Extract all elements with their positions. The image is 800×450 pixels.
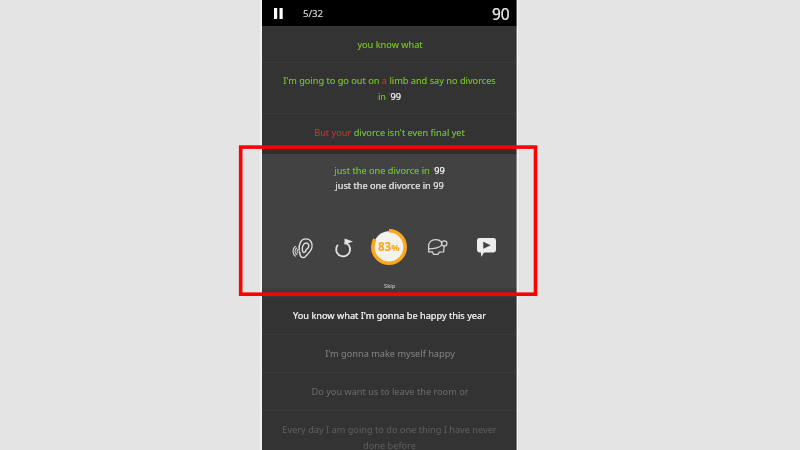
staticText: I'm gonna make myself happy bbox=[325, 347, 455, 360]
button[interactable]: But your divorce isn't even final yet bbox=[262, 114, 517, 151]
staticText: 83% bbox=[378, 239, 400, 255]
button[interactable]: I'm gonna make myself happy bbox=[262, 335, 517, 372]
staticText: Skip bbox=[384, 282, 396, 290]
staticText: you know what bbox=[357, 38, 423, 51]
button[interactable]: Replay bbox=[326, 229, 362, 265]
button[interactable]: just the one divorce in '99 bbox=[262, 151, 517, 296]
button[interactable]: Every day I am going to do one thing I h… bbox=[262, 411, 517, 450]
button[interactable]: You know what I'm gonna be happy this ye… bbox=[262, 297, 517, 334]
staticText: You know what I'm gonna be happy this ye… bbox=[293, 309, 486, 322]
button[interactable]: Watch video bbox=[468, 229, 504, 265]
staticText: But your divorce isn't even final yet bbox=[314, 126, 465, 139]
staticText: 5/32 bbox=[303, 7, 324, 20]
staticText: just the one divorce in 99 bbox=[335, 179, 444, 192]
button[interactable]: Listen bbox=[283, 229, 319, 265]
staticText: Do you want us to leave the room or bbox=[311, 385, 469, 398]
staticText: just the one divorce in '99 bbox=[334, 164, 445, 177]
button[interactable]: I'm going to go out on a limb and say no… bbox=[262, 63, 517, 113]
staticText: Every day I am going to do one thing I h… bbox=[282, 423, 497, 450]
button[interactable]: 83 percent complete bbox=[371, 229, 407, 265]
button[interactable]: you know what bbox=[262, 26, 517, 62]
button[interactable]: Skip bbox=[262, 273, 517, 296]
staticText: I'm going to go out on a limb and say no… bbox=[283, 74, 496, 103]
button[interactable]: Pause bbox=[266, 0, 290, 26]
button[interactable]: Slow playback bbox=[420, 229, 456, 265]
button[interactable]: Do you want us to leave the room or bbox=[262, 373, 517, 410]
staticText: 90 bbox=[492, 3, 510, 24]
